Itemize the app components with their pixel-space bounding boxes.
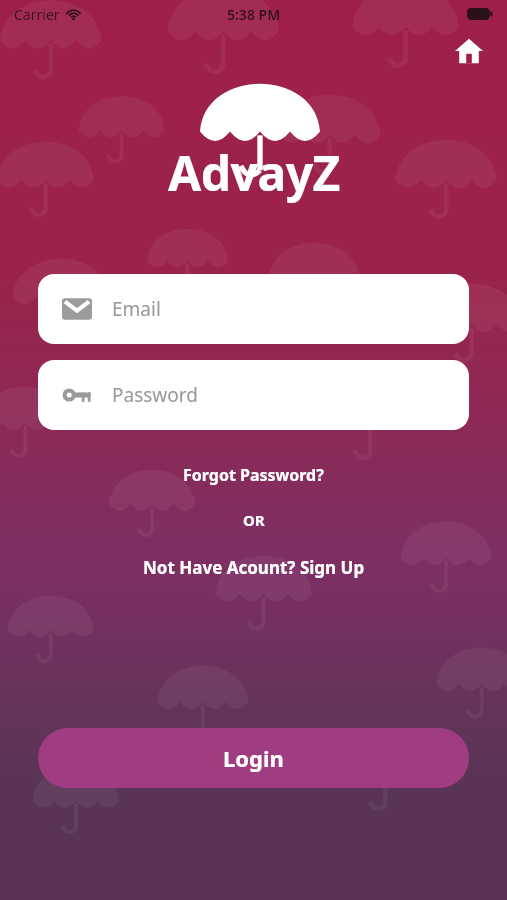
staticText: 5:38 PM — [227, 5, 281, 24]
staticText: AdvayZ — [168, 140, 340, 205]
staticText: OR — [243, 510, 265, 530]
staticText: Email — [112, 296, 161, 322]
button[interactable]: Forgot Password? — [169, 460, 338, 490]
staticText: Password — [112, 382, 198, 408]
button[interactable]: Not Have Acount? Sign Up — [129, 552, 379, 583]
button[interactable]: Email — [38, 274, 469, 344]
staticText: Carrier — [14, 5, 60, 24]
staticText: Login — [223, 743, 284, 773]
button[interactable]: Home — [449, 31, 489, 71]
staticText: Not Have Acount? Sign Up — [143, 556, 365, 579]
button[interactable]: Login — [38, 728, 469, 788]
staticText: Forgot Password? — [183, 464, 324, 486]
button[interactable]: Password — [38, 360, 469, 430]
